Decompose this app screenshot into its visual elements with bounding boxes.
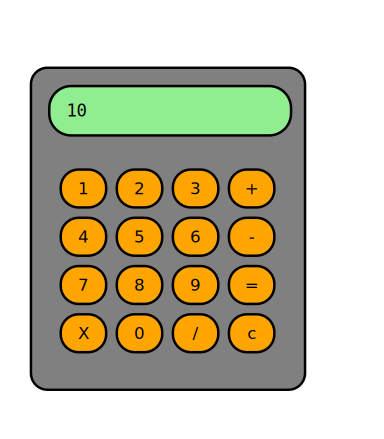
- staticText: 4: [78, 227, 89, 246]
- button[interactable]: 2: [117, 170, 162, 207]
- button[interactable]: 4: [61, 218, 106, 256]
- staticText: =: [245, 275, 259, 295]
- staticText: -: [249, 227, 255, 246]
- staticText: c: [247, 323, 256, 343]
- button[interactable]: 5: [117, 218, 162, 256]
- button[interactable]: 7: [61, 266, 106, 304]
- staticText: 0: [134, 323, 145, 343]
- button[interactable]: 6: [173, 218, 218, 256]
- button[interactable]: 3: [173, 170, 218, 207]
- staticText: X: [78, 323, 89, 343]
- staticText: 9: [190, 275, 201, 295]
- staticText: 10: [67, 100, 87, 121]
- staticText: 1: [78, 179, 89, 198]
- button[interactable]: =: [229, 266, 274, 304]
- button[interactable]: 9: [173, 266, 218, 304]
- button[interactable]: -: [229, 218, 274, 256]
- button[interactable]: c: [229, 314, 274, 352]
- staticText: 6: [190, 227, 201, 246]
- staticText: 2: [134, 179, 145, 198]
- staticText: 7: [78, 275, 89, 295]
- staticText: +: [245, 179, 259, 198]
- staticText: /: [193, 323, 199, 343]
- button[interactable]: 0: [117, 314, 162, 352]
- staticText: 8: [134, 275, 145, 295]
- button[interactable]: 1: [61, 170, 106, 207]
- button[interactable]: /: [173, 314, 218, 352]
- staticText: 5: [134, 227, 145, 246]
- button[interactable]: 8: [117, 266, 162, 304]
- button[interactable]: X: [61, 314, 106, 352]
- staticText: 3: [190, 179, 201, 198]
- button[interactable]: +: [229, 170, 274, 207]
